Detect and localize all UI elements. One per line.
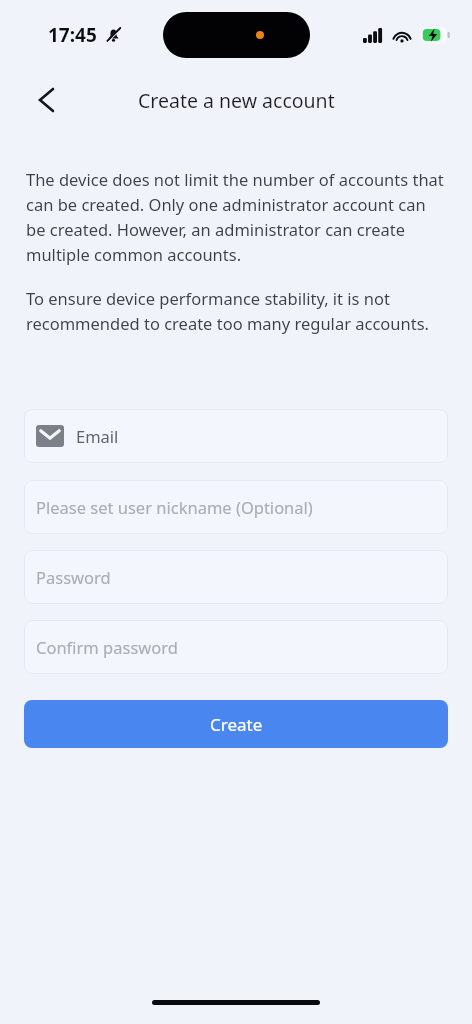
staticText: The device does not limit the number of …: [26, 168, 446, 265]
button[interactable]: Password: [24, 550, 448, 604]
staticText: 17:45: [48, 22, 97, 48]
staticText: To ensure device performance stability, …: [26, 287, 446, 334]
button[interactable]: Email: [24, 409, 448, 463]
button[interactable]: Back: [26, 80, 66, 120]
staticText: Create a new account: [138, 87, 335, 114]
button[interactable]: Please set user nickname (Optional): [24, 480, 448, 534]
staticText: Email: [76, 425, 119, 447]
button[interactable]: Confirm password: [24, 620, 448, 674]
staticText: Please set user nickname (Optional): [36, 496, 313, 518]
staticText: Confirm password: [36, 636, 178, 658]
staticText: Create: [210, 713, 263, 736]
button[interactable]: Create: [24, 700, 448, 748]
staticText: Password: [36, 566, 111, 588]
